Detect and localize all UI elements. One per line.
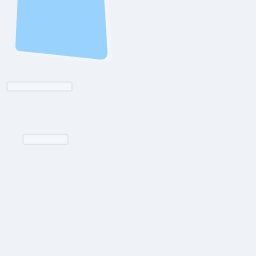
button[interactable]: Row one	[7, 82, 72, 91]
button[interactable]: Row two	[23, 134, 68, 144]
